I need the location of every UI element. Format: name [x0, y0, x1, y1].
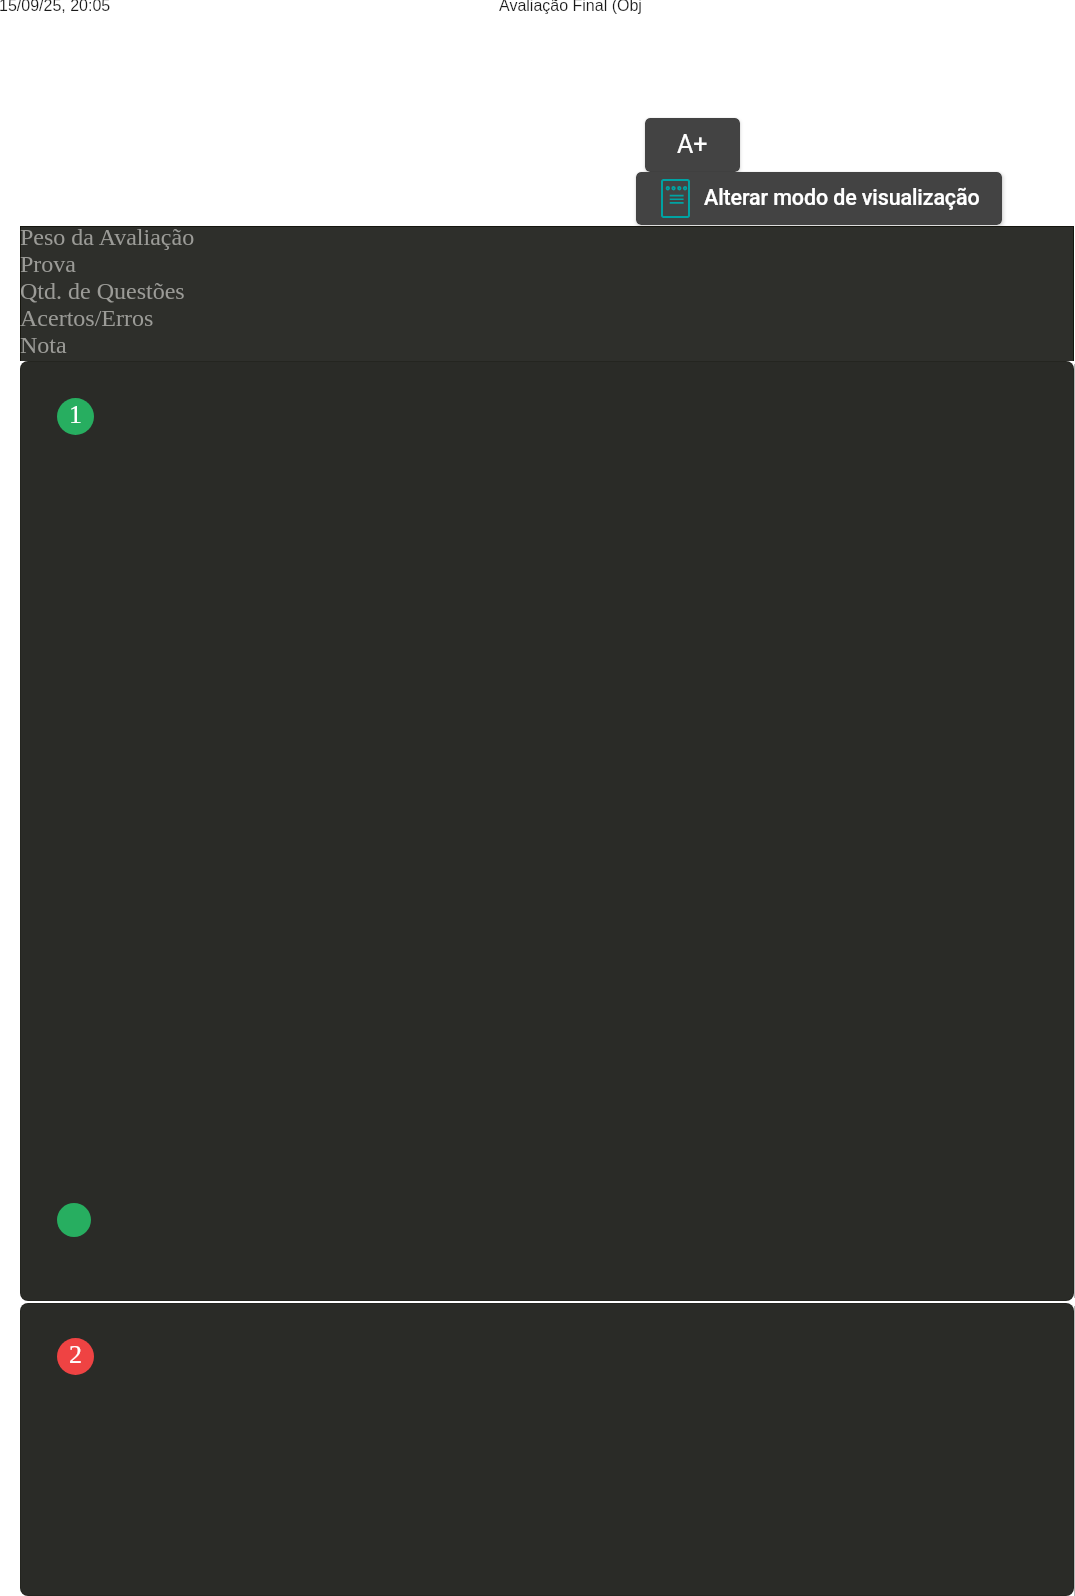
staticText: Acertos/Erros [20, 305, 154, 332]
staticText: Alterar modo de visualização [704, 185, 980, 210]
button[interactable]: 1 [21, 362, 1073, 1300]
staticText: Avaliação Final (Obj [499, 0, 642, 15]
staticText: 15/09/25, 20:05 [0, 0, 111, 15]
staticText: 2 [69, 1340, 82, 1369]
staticText: Qtd. de Questões [20, 278, 185, 305]
staticText: A+ [677, 130, 708, 159]
button[interactable]: Alterar modo de visualização [636, 172, 1002, 225]
staticText: Peso da Avaliação [20, 224, 195, 251]
staticText: 1 [69, 400, 82, 429]
other: Alterar modo de visualização [661, 179, 690, 218]
staticText: Prova [20, 251, 76, 278]
button[interactable]: A+ [645, 118, 740, 172]
button[interactable]: 2 [21, 1304, 1073, 1595]
staticText: Nota [20, 332, 67, 358]
